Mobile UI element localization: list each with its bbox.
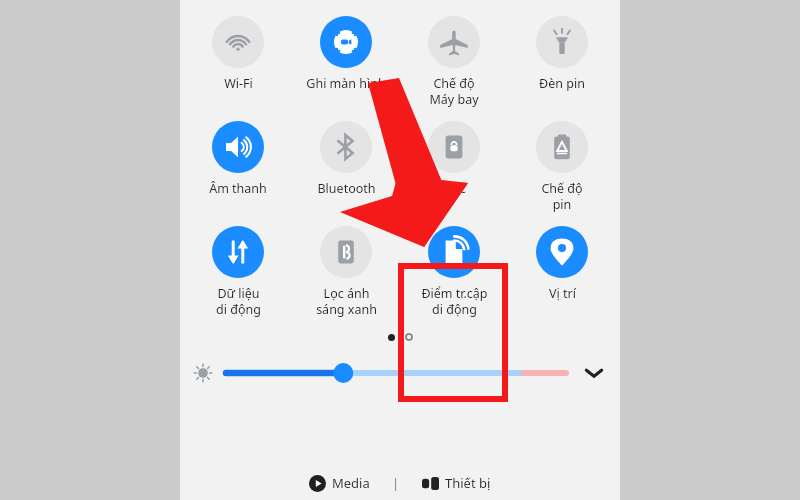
button[interactable]: Lọc ánh sáng xanh	[296, 226, 396, 317]
staticText: Bluetooth	[317, 180, 376, 197]
staticText: Vị trí	[549, 285, 576, 302]
button[interactable]: Expand	[580, 359, 608, 387]
button[interactable]: Âm thanh	[188, 121, 288, 197]
staticText: Dọc	[443, 180, 466, 197]
staticText: Ghi màn hình	[306, 75, 386, 92]
staticText: Dữ liệu di động	[216, 285, 261, 317]
button[interactable]: Media	[309, 474, 370, 492]
button[interactable]: Wi-Fi	[188, 16, 288, 92]
staticText: |	[392, 474, 400, 492]
button[interactable]: Chế độ Máy bay	[404, 16, 504, 107]
button[interactable]: Dọc	[404, 121, 504, 197]
staticText: Thiết bị	[445, 474, 491, 492]
button[interactable]: Đèn pin	[512, 16, 612, 92]
staticText: Wi-Fi	[224, 75, 253, 92]
button[interactable]: Ghi màn hình	[296, 16, 396, 92]
button[interactable]: Dữ liệu di động	[188, 226, 288, 317]
staticText: Media	[332, 474, 370, 492]
staticText: Đèn pin	[539, 75, 585, 92]
staticText: Lọc ánh sáng xanh	[316, 285, 377, 317]
staticText: Âm thanh	[209, 180, 267, 197]
button[interactable]: Thiết bị	[422, 474, 491, 492]
button[interactable]: Bluetooth	[296, 121, 396, 197]
button[interactable]: Vị trí	[512, 226, 612, 302]
staticText: Chế độ pin	[541, 180, 583, 212]
staticText: Chế độ Máy bay	[429, 75, 479, 107]
button[interactable]: Chế độ pin	[512, 121, 612, 212]
button[interactable]: Điểm tr.cập di động	[404, 226, 504, 317]
staticText: Điểm tr.cập di động	[421, 285, 488, 317]
